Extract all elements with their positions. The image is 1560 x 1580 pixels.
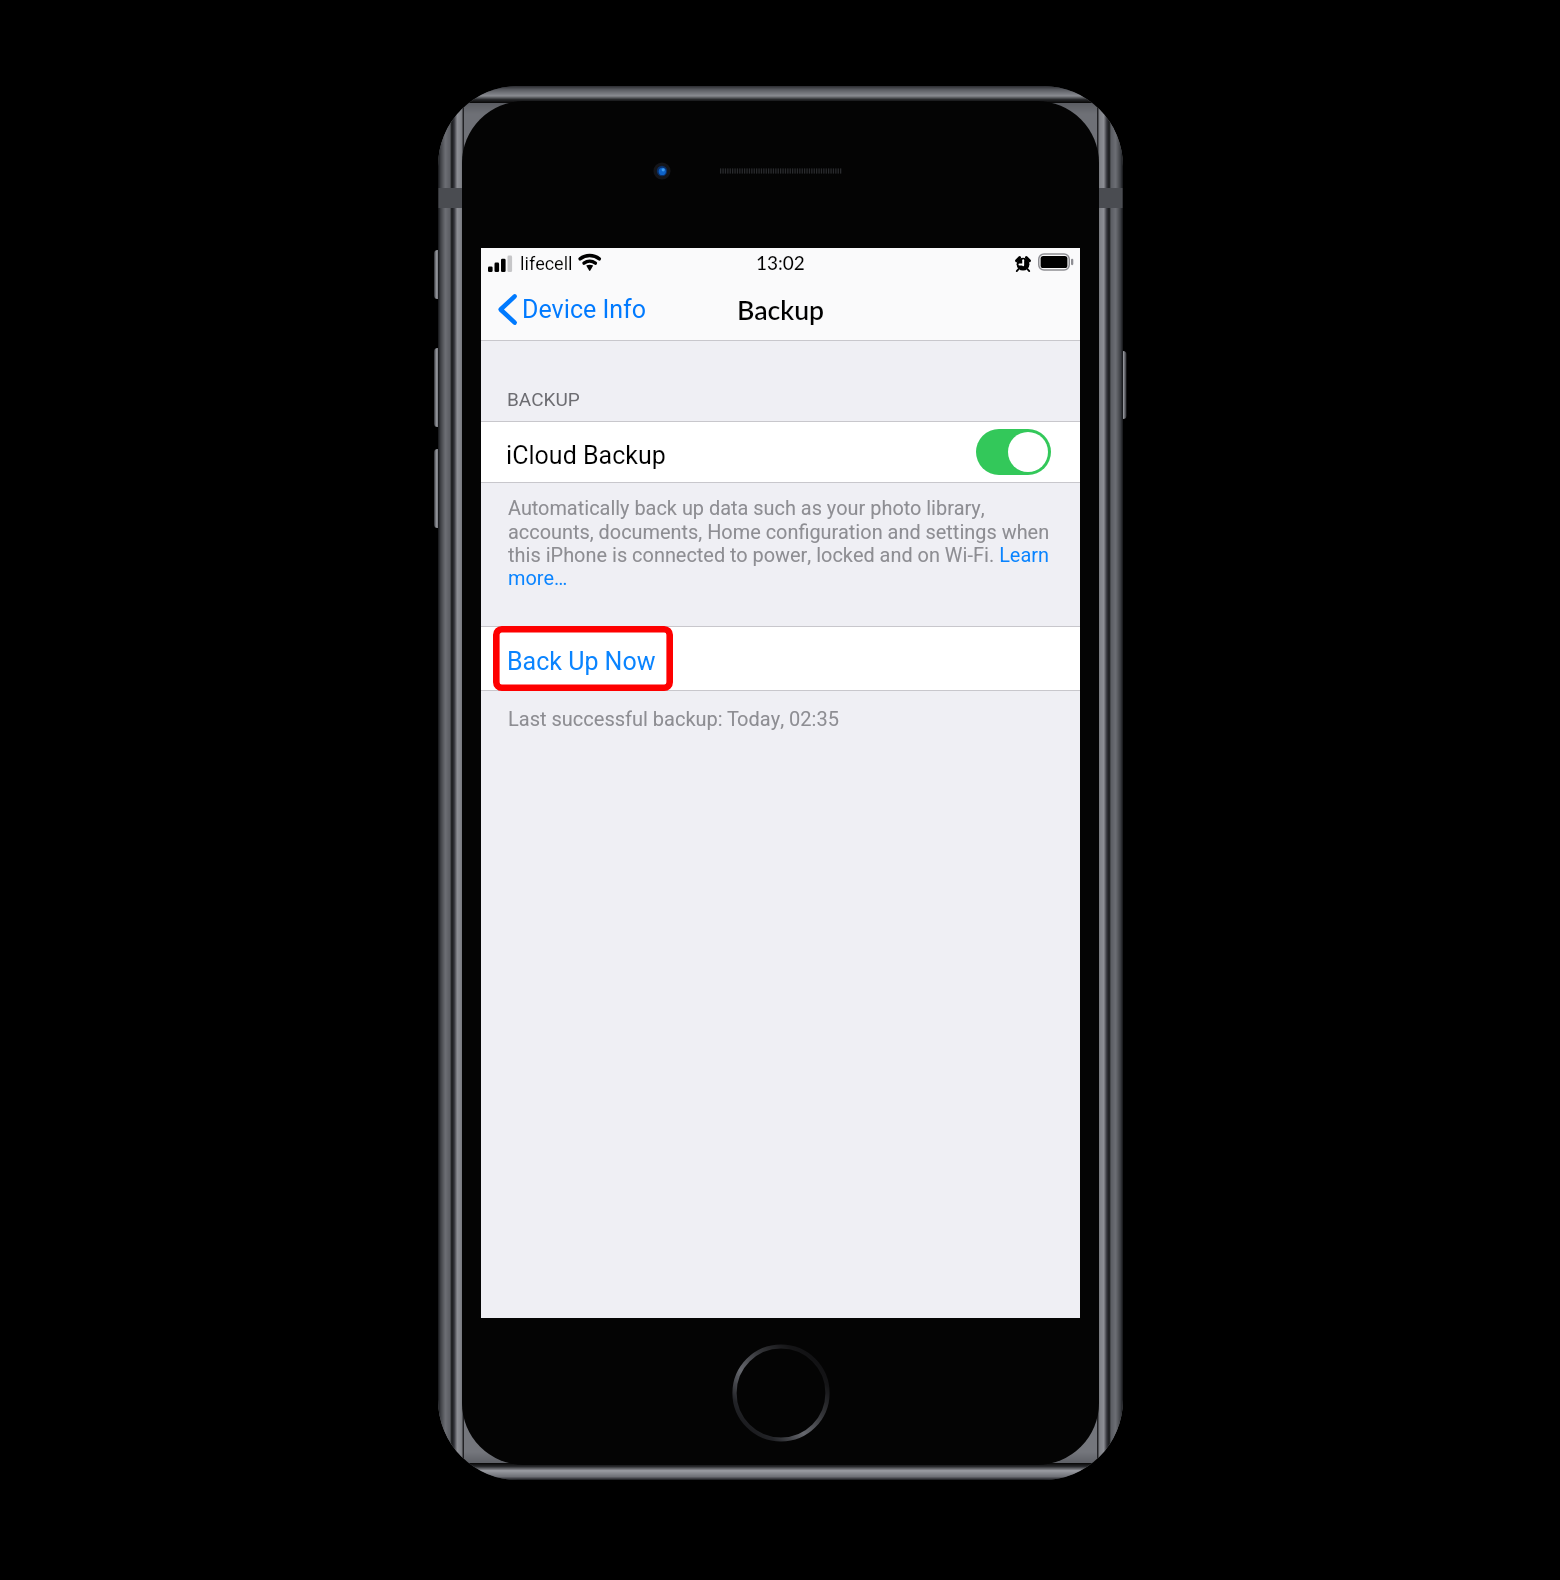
button[interactable]: iCloud Backup toggle, on bbox=[976, 429, 1051, 475]
staticText: Device Info bbox=[522, 292, 647, 329]
button[interactable]: iCloud Backup bbox=[481, 422, 1080, 482]
staticText: Back Up Now bbox=[507, 644, 656, 681]
other: Back Up Now highlight bbox=[493, 626, 673, 691]
staticText: Backup bbox=[737, 294, 825, 326]
button[interactable]: Back Up Now bbox=[481, 627, 1080, 690]
staticText: Automatically back up data such as your … bbox=[508, 494, 1056, 593]
staticText: lifecell bbox=[520, 251, 573, 277]
staticText: iCloud Backup bbox=[506, 438, 666, 475]
staticText: 13:02 bbox=[756, 251, 805, 274]
staticText: Last successful backup: Today, 02:35 bbox=[508, 705, 839, 734]
button[interactable]: Device Info bbox=[493, 292, 663, 340]
staticText: BACKUP bbox=[507, 386, 580, 414]
